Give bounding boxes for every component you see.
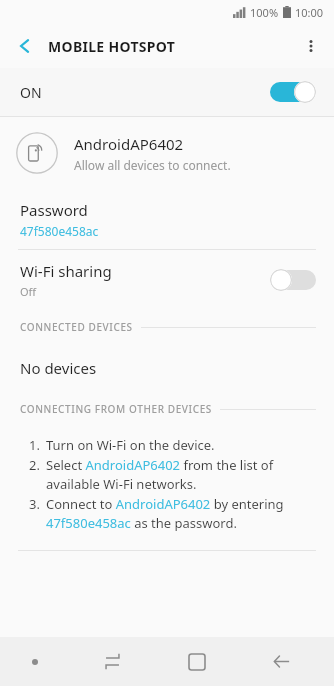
staticText: CONNECTED DEVICES xyxy=(20,320,133,334)
staticText: 10:00 xyxy=(295,5,324,20)
button[interactable]: Back xyxy=(239,637,324,686)
staticText: Connect to AndroidAP6402 by entering 47f… xyxy=(46,495,316,532)
button[interactable]: AndroidAP6402 xyxy=(0,117,334,189)
button[interactable]: Indicator xyxy=(0,637,70,686)
button[interactable]: ON xyxy=(0,68,334,116)
staticText: Turn on Wi-Fi on the device. xyxy=(46,436,215,454)
button[interactable]: Home xyxy=(154,637,239,686)
staticText: 3. xyxy=(18,495,40,513)
staticText: 100% xyxy=(250,5,279,20)
staticText: 47f580e458ac xyxy=(20,223,99,239)
button[interactable]: More options xyxy=(294,29,328,63)
button[interactable]: Password xyxy=(0,189,334,249)
staticText: Allow all devices to connect. xyxy=(74,157,231,173)
staticText: MOBILE HOTSPOT xyxy=(48,37,176,56)
button[interactable]: Recent apps xyxy=(70,637,154,686)
staticText: CONNECTING FROM OTHER DEVICES xyxy=(20,402,212,416)
staticText: Password xyxy=(20,200,88,220)
staticText: Off xyxy=(20,284,37,299)
staticText: ON xyxy=(20,83,42,102)
staticText: AndroidAP6402 xyxy=(74,134,184,154)
staticText: Select AndroidAP6402 from the list of av… xyxy=(46,456,316,493)
staticText: 2. xyxy=(18,456,40,474)
staticText: No devices xyxy=(20,358,97,378)
staticText: 1. xyxy=(18,436,40,454)
button[interactable]: Wi-Fi sharing xyxy=(0,250,334,310)
staticText: Wi-Fi sharing xyxy=(20,261,112,281)
button[interactable]: Back xyxy=(8,29,42,63)
